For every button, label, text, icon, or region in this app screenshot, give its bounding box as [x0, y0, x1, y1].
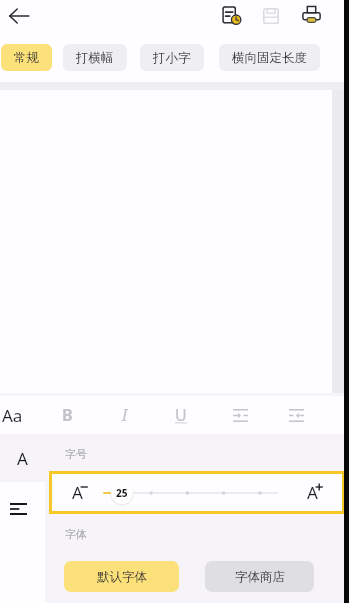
- button[interactable]: 横向固定长度: [219, 44, 320, 71]
- button[interactable]: Decrease font size: [49, 471, 104, 514]
- staticText: A: [17, 447, 28, 470]
- button[interactable]: Font tab: [0, 434, 45, 482]
- staticText: A: [307, 481, 318, 504]
- button[interactable]: Decrease indent: [270, 396, 322, 434]
- button[interactable]: Save: [251, 0, 291, 31]
- button[interactable]: Increase indent: [214, 396, 266, 434]
- button[interactable]: Aa: [0, 396, 52, 434]
- button[interactable]: 打小字: [140, 44, 204, 71]
- staticText: 25: [116, 486, 128, 500]
- button[interactable]: History: [211, 0, 251, 31]
- staticText: U: [175, 404, 187, 426]
- button[interactable]: Increase font size: [279, 471, 345, 514]
- staticText: I: [122, 404, 128, 426]
- staticText: 打横幅: [76, 50, 114, 66]
- button[interactable]: Paragraph tab: [0, 482, 45, 603]
- button[interactable]: 常规: [1, 44, 52, 71]
- staticText: 横向固定长度: [232, 50, 307, 66]
- staticText: 默认字体: [97, 569, 147, 585]
- button[interactable]: Print: [291, 0, 331, 31]
- button[interactable]: Back: [3, 0, 34, 31]
- staticText: 字体商店: [235, 569, 285, 585]
- button[interactable]: 默认字体: [64, 561, 179, 592]
- staticText: 常规: [14, 50, 39, 66]
- staticText: 字号: [65, 447, 87, 461]
- staticText: Aa: [2, 404, 23, 427]
- staticText: A: [72, 481, 83, 504]
- button[interactable]: 字体商店: [205, 561, 314, 592]
- button[interactable]: 打横幅: [63, 44, 127, 71]
- button[interactable]: B: [41, 396, 93, 434]
- staticText: 打小字: [153, 50, 191, 66]
- staticText: 字体: [65, 527, 87, 541]
- staticText: B: [62, 404, 73, 426]
- button[interactable]: I: [99, 396, 151, 434]
- button[interactable]: U: [155, 396, 207, 434]
